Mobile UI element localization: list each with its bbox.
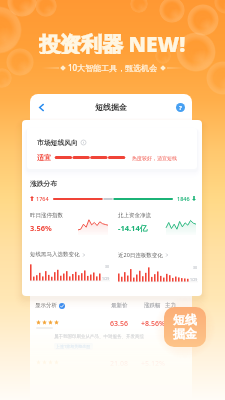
button[interactable]: Back	[34, 100, 49, 115]
staticText: 上涨1家相关概念股	[56, 344, 91, 349]
staticText: 1764	[36, 195, 49, 202]
button[interactable]: 显示分析	[35, 302, 65, 309]
staticText: 短线 掘金	[173, 312, 197, 342]
staticText: 21.08	[110, 359, 128, 369]
staticText: 30	[193, 265, 198, 270]
staticText: +8.56%	[141, 319, 165, 329]
staticText: 63.56	[110, 319, 128, 329]
button[interactable]: 短线黑马入选数变化	[28, 251, 110, 289]
staticText: 涨跌分布	[30, 179, 58, 188]
staticText: 1/29	[102, 276, 110, 281]
button[interactable]: 市场短线风向	[27, 128, 197, 169]
staticText: +5.12%	[141, 359, 165, 369]
button[interactable]: 63.56	[30, 314, 192, 334]
staticText: 适宜	[37, 153, 51, 162]
staticText: 短线黑马入选数变化	[30, 251, 80, 258]
staticText: -14.14亿	[118, 223, 148, 233]
staticText: 昨日涨停指数	[30, 212, 63, 219]
button[interactable]: 近20日连板数变化	[116, 251, 198, 289]
button[interactable]: Help	[173, 100, 188, 115]
staticText: 主力	[165, 302, 176, 309]
staticText: 最新价	[111, 302, 128, 309]
button[interactable]: 昨日涨停指数	[30, 212, 108, 239]
staticText: 10大智能工具，甄选机会	[68, 62, 158, 73]
staticText: 1846	[177, 195, 190, 202]
staticText: ?	[179, 104, 182, 112]
staticText: 30	[105, 264, 110, 269]
button[interactable]: 北上资金净流	[118, 212, 196, 239]
staticText: 近20日连板数变化	[118, 251, 163, 259]
staticText: 市场短线风向	[37, 138, 78, 147]
staticText: 显示分析	[35, 302, 57, 309]
staticText: 北上资金净流	[118, 212, 151, 219]
staticText: 短线掘金	[95, 102, 127, 112]
staticText: 属于我国印刷业从产品、中游服务、开发商综	[54, 334, 144, 340]
staticText: 投资利器 NEW!	[39, 30, 186, 54]
staticText: 1/29	[190, 277, 198, 282]
staticText: 涨跌幅	[144, 302, 161, 309]
staticText: 热度较好，适宜短线	[132, 155, 177, 161]
staticText: 3.56%	[30, 223, 52, 233]
button[interactable]: 短线 掘金	[164, 307, 206, 347]
